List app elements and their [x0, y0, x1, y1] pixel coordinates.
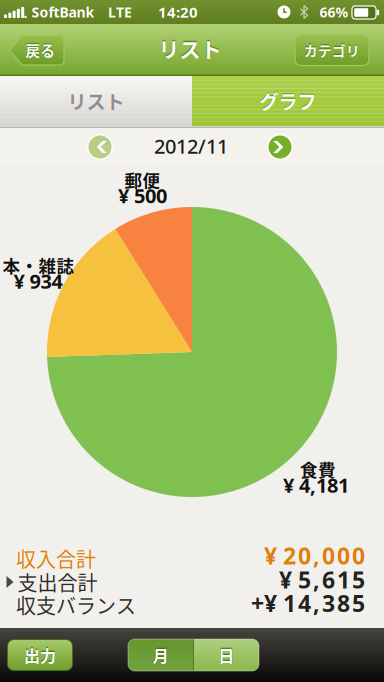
staticText: ¥ 934 [13, 267, 62, 295]
staticText: ¥ 500 [118, 182, 167, 209]
staticText: 日 [218, 643, 234, 667]
button[interactable]: 月 [128, 639, 193, 671]
staticText: グラフ [259, 87, 316, 115]
staticText: 支出合計 [17, 567, 97, 596]
button[interactable]: 戻る [9, 35, 64, 65]
staticText: カテゴリ [304, 40, 360, 60]
staticText: SoftBank [31, 2, 94, 22]
staticText: 収支バランス [16, 590, 136, 619]
staticText: リスト [158, 33, 221, 63]
button[interactable]: 日 [193, 639, 259, 671]
button[interactable]: 支出合計 [6, 567, 97, 596]
staticText: 2012/11 [154, 132, 228, 160]
button[interactable]: 出力 [7, 639, 73, 671]
staticText: 食費 [300, 456, 336, 482]
staticText: 66% [319, 2, 348, 22]
staticText: ¥ 5 , 6 1 5 [279, 564, 365, 595]
staticText: ¥ 2 0 , 0 0 0 [264, 540, 365, 571]
staticText: 戻る [25, 39, 55, 60]
staticText: 郵便 [124, 167, 160, 192]
button[interactable]: Previous month [86, 133, 113, 160]
staticText: 月 [153, 643, 169, 667]
staticText: リスト [67, 87, 124, 115]
button[interactable]: カテゴリ [295, 34, 369, 65]
staticText: ¥ 4,181 [283, 471, 349, 499]
staticText: 本・雑誌 [2, 252, 74, 278]
staticText: 出力 [24, 643, 56, 667]
button[interactable]: リスト [0, 76, 192, 126]
staticText: +¥ 1 4 , 3 8 5 [251, 587, 365, 619]
staticText: 14:20 [158, 2, 198, 22]
staticText: LTE [108, 2, 132, 22]
button[interactable]: Next month [266, 133, 293, 160]
button[interactable]: グラフ [192, 76, 384, 126]
staticText: 収入合計 [16, 544, 96, 573]
